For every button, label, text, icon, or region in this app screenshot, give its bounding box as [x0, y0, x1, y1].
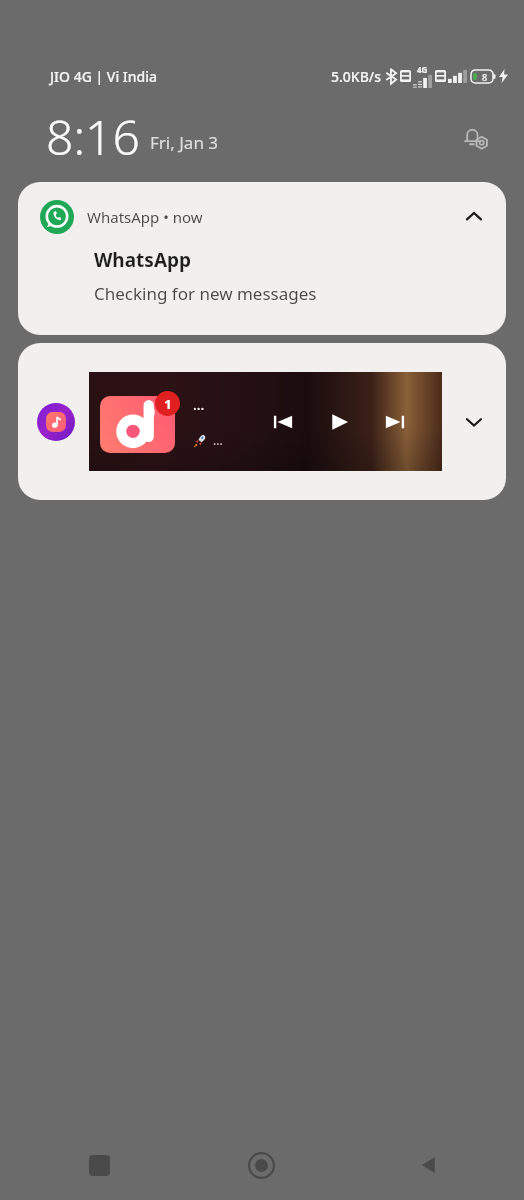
button[interactable]: Next [377, 404, 413, 440]
staticText: WhatsApp [94, 247, 192, 273]
button[interactable]: Recent apps [0, 1130, 174, 1200]
button[interactable]: WhatsApp • now [18, 182, 506, 335]
button[interactable]: Previous [265, 404, 301, 440]
staticText: 8 [482, 71, 488, 83]
staticText: 8:16 [46, 104, 140, 169]
button[interactable]: Expand media notification [442, 343, 506, 500]
staticText: JIO 4G | Vi India [50, 67, 158, 86]
button[interactable]: Home [174, 1130, 349, 1200]
button[interactable]: Play [321, 404, 357, 440]
button[interactable]: 1 [18, 343, 506, 500]
staticText: 1 [164, 395, 172, 413]
button[interactable]: Notification settings [456, 117, 496, 157]
staticText: Checking for new messages [94, 282, 317, 305]
staticText: 4G [417, 64, 428, 75]
staticText: 5.0KB/s [331, 67, 382, 86]
staticText: ... [213, 432, 223, 448]
button[interactable]: Collapse notification [456, 199, 492, 235]
staticText: WhatsApp • now [87, 207, 203, 227]
staticText: ... [193, 395, 205, 414]
staticText: Fri, Jan 3 [150, 131, 219, 154]
